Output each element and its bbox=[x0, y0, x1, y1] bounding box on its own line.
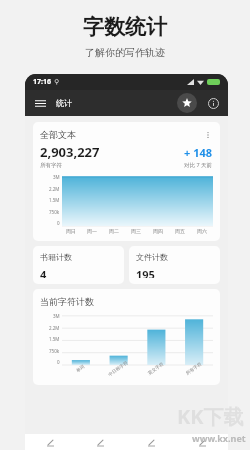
staticText: 当前字符计数 bbox=[40, 296, 94, 307]
staticText: 17:16 bbox=[33, 77, 51, 87]
button[interactable]: 文件计数 bbox=[129, 246, 220, 284]
staticText: 195 bbox=[136, 267, 155, 278]
staticText: 750k bbox=[49, 209, 60, 215]
button[interactable]: Favorite bbox=[177, 93, 197, 113]
staticText: 1.5M bbox=[49, 197, 60, 203]
button[interactable]: More options bbox=[203, 130, 213, 140]
staticText: 所有字符 bbox=[185, 361, 203, 377]
staticText: 所有字符 bbox=[40, 162, 62, 169]
staticText: 2.2M bbox=[49, 186, 60, 192]
staticText: 2.2M bbox=[49, 325, 60, 331]
staticText: 字数统计 bbox=[83, 14, 167, 40]
staticText: 了解你的写作轨迹 bbox=[85, 46, 165, 59]
staticText: 全部文本 bbox=[40, 129, 76, 140]
button[interactable]: Stats bbox=[75, 434, 126, 450]
staticText: + 148 bbox=[184, 145, 213, 160]
button[interactable]: Library bbox=[126, 434, 177, 450]
staticText: 750k bbox=[49, 348, 60, 354]
staticText: 中日韩字符 bbox=[107, 360, 130, 378]
staticText: 3M bbox=[53, 174, 60, 180]
staticText: 周四 bbox=[153, 228, 163, 234]
staticText: 3M bbox=[53, 313, 60, 319]
staticText: 0 bbox=[57, 359, 60, 365]
staticText: 书籍计数 bbox=[40, 252, 72, 262]
staticText: 周二 bbox=[109, 228, 119, 234]
staticText: 对比 7 天前 bbox=[184, 161, 213, 169]
staticText: 0 bbox=[57, 220, 60, 226]
staticText: 周三 bbox=[131, 228, 141, 234]
button[interactable]: Info bbox=[206, 96, 220, 110]
staticText: KK下载 bbox=[177, 403, 244, 430]
button[interactable]: Settings bbox=[177, 434, 228, 450]
button[interactable]: Menu bbox=[33, 96, 47, 110]
staticText: 文件计数 bbox=[136, 252, 168, 262]
button[interactable]: 书籍计数 bbox=[33, 246, 124, 284]
button[interactable]: 当前字符计数 bbox=[33, 289, 220, 385]
staticText: 2,903,227 bbox=[40, 143, 100, 161]
staticText: 周一 bbox=[87, 228, 97, 234]
button[interactable]: 全部文本 bbox=[33, 122, 220, 241]
staticText: 统计 bbox=[56, 98, 72, 108]
staticText: 周五 bbox=[175, 228, 185, 234]
staticText: www.kx.net bbox=[192, 432, 246, 444]
staticText: 单词 bbox=[75, 364, 86, 374]
staticText: 周日 bbox=[66, 228, 76, 234]
staticText: 周六 bbox=[197, 228, 207, 234]
staticText: 英文字符 bbox=[147, 361, 165, 377]
staticText: 4 bbox=[40, 267, 47, 278]
staticText: 1.5M bbox=[49, 336, 60, 342]
button[interactable]: Edit bbox=[25, 434, 75, 450]
